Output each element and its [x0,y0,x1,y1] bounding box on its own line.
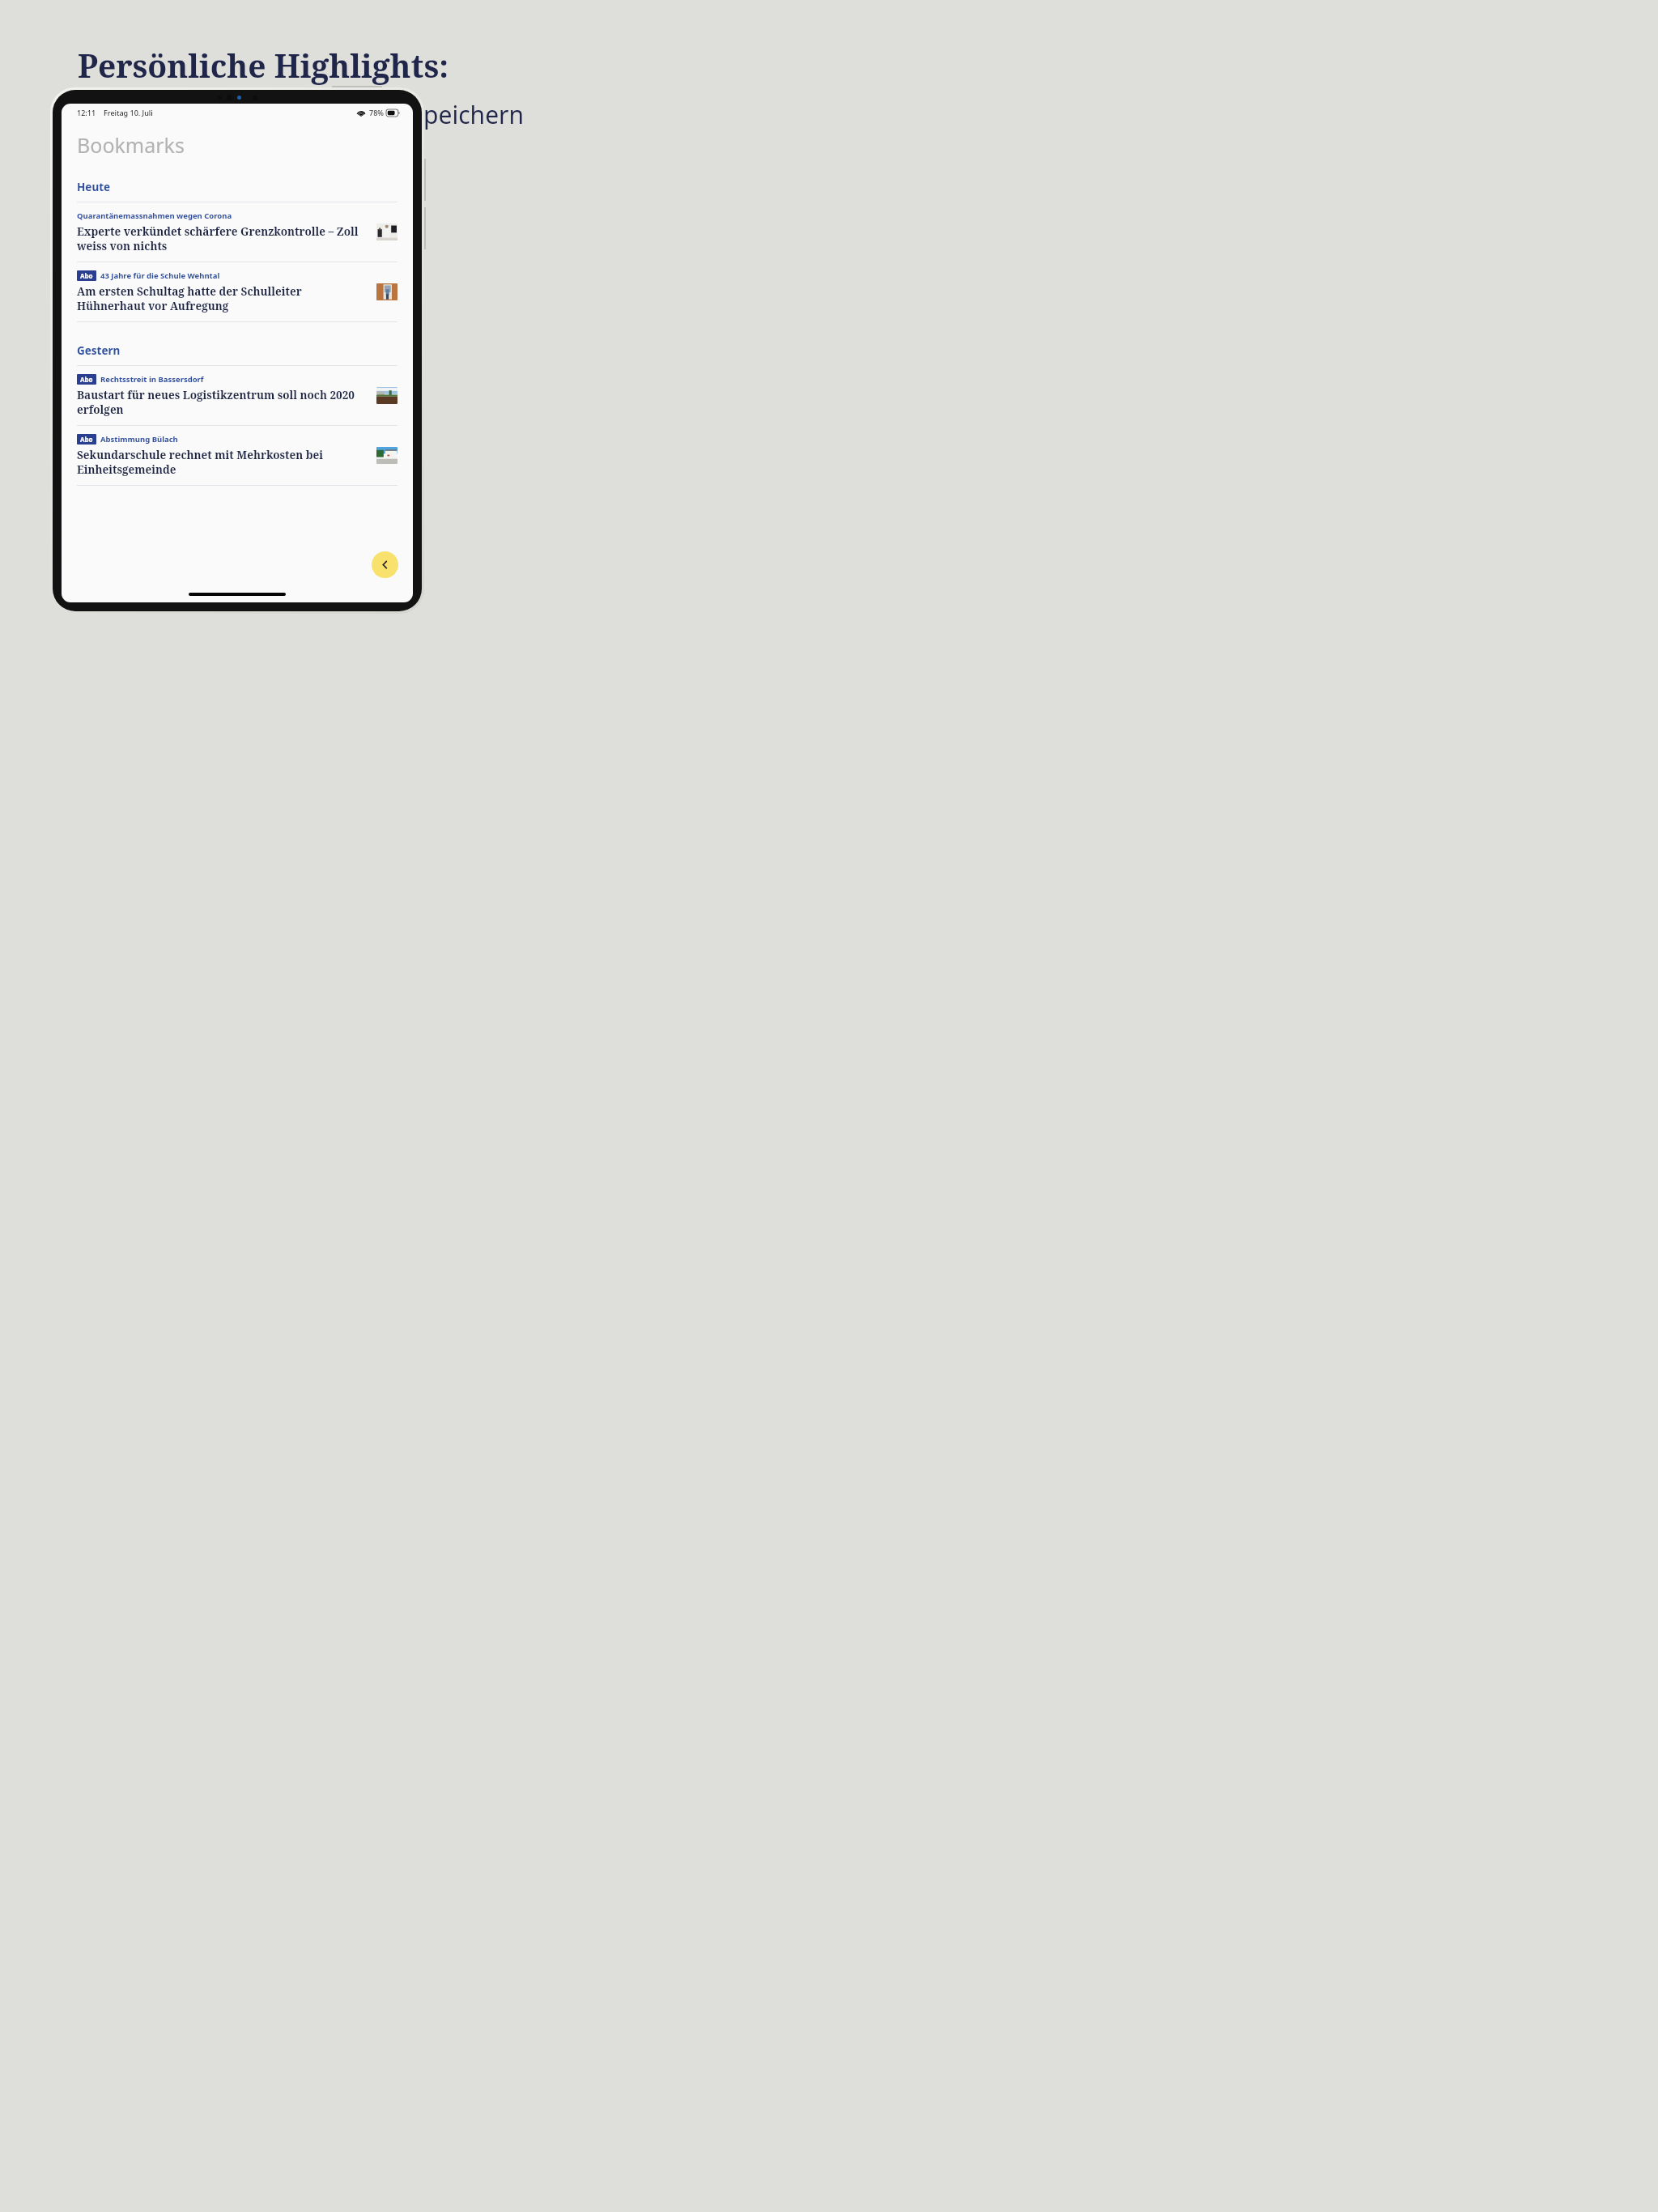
button[interactable]: Abo [62,262,413,322]
staticText: Gestern [77,343,121,358]
button[interactable]: Abo [62,366,413,426]
staticText: Persönliche Highlights: [78,44,449,87]
staticText: Bookmarks [77,131,185,159]
staticText: Heute [77,180,111,194]
staticText: Freitag 10. Juli [104,108,153,117]
staticText: Rechtsstreit in Bassersdorf [100,374,204,385]
staticText: 78% [369,108,384,117]
staticText: Abstimmung Bülach [100,434,178,445]
staticText: Experte verkündet schärfere Grenzkontrol… [77,224,368,253]
button[interactable]: Abo [62,426,413,486]
staticText: Abo [80,375,93,384]
staticText: Am ersten Schultag hatte der Schulleiter… [77,284,368,313]
button[interactable]: Back [372,551,398,578]
staticText: Abo [80,435,93,444]
staticText: Spannende Artikel für später speichern [78,98,524,131]
staticText: 43 Jahre für die Schule Wehntal [100,270,220,281]
staticText: 12:11 [77,108,96,117]
staticText: Quarantänemassnahmen wegen Corona [77,211,232,221]
staticText: Baustart für neues Logistikzentrum soll … [77,388,368,417]
button[interactable]: Quarantänemassnahmen wegen Corona [62,202,413,262]
staticText: Sekundarschule rechnet mit Mehrkosten be… [77,448,368,477]
staticText: Abo [80,271,93,280]
